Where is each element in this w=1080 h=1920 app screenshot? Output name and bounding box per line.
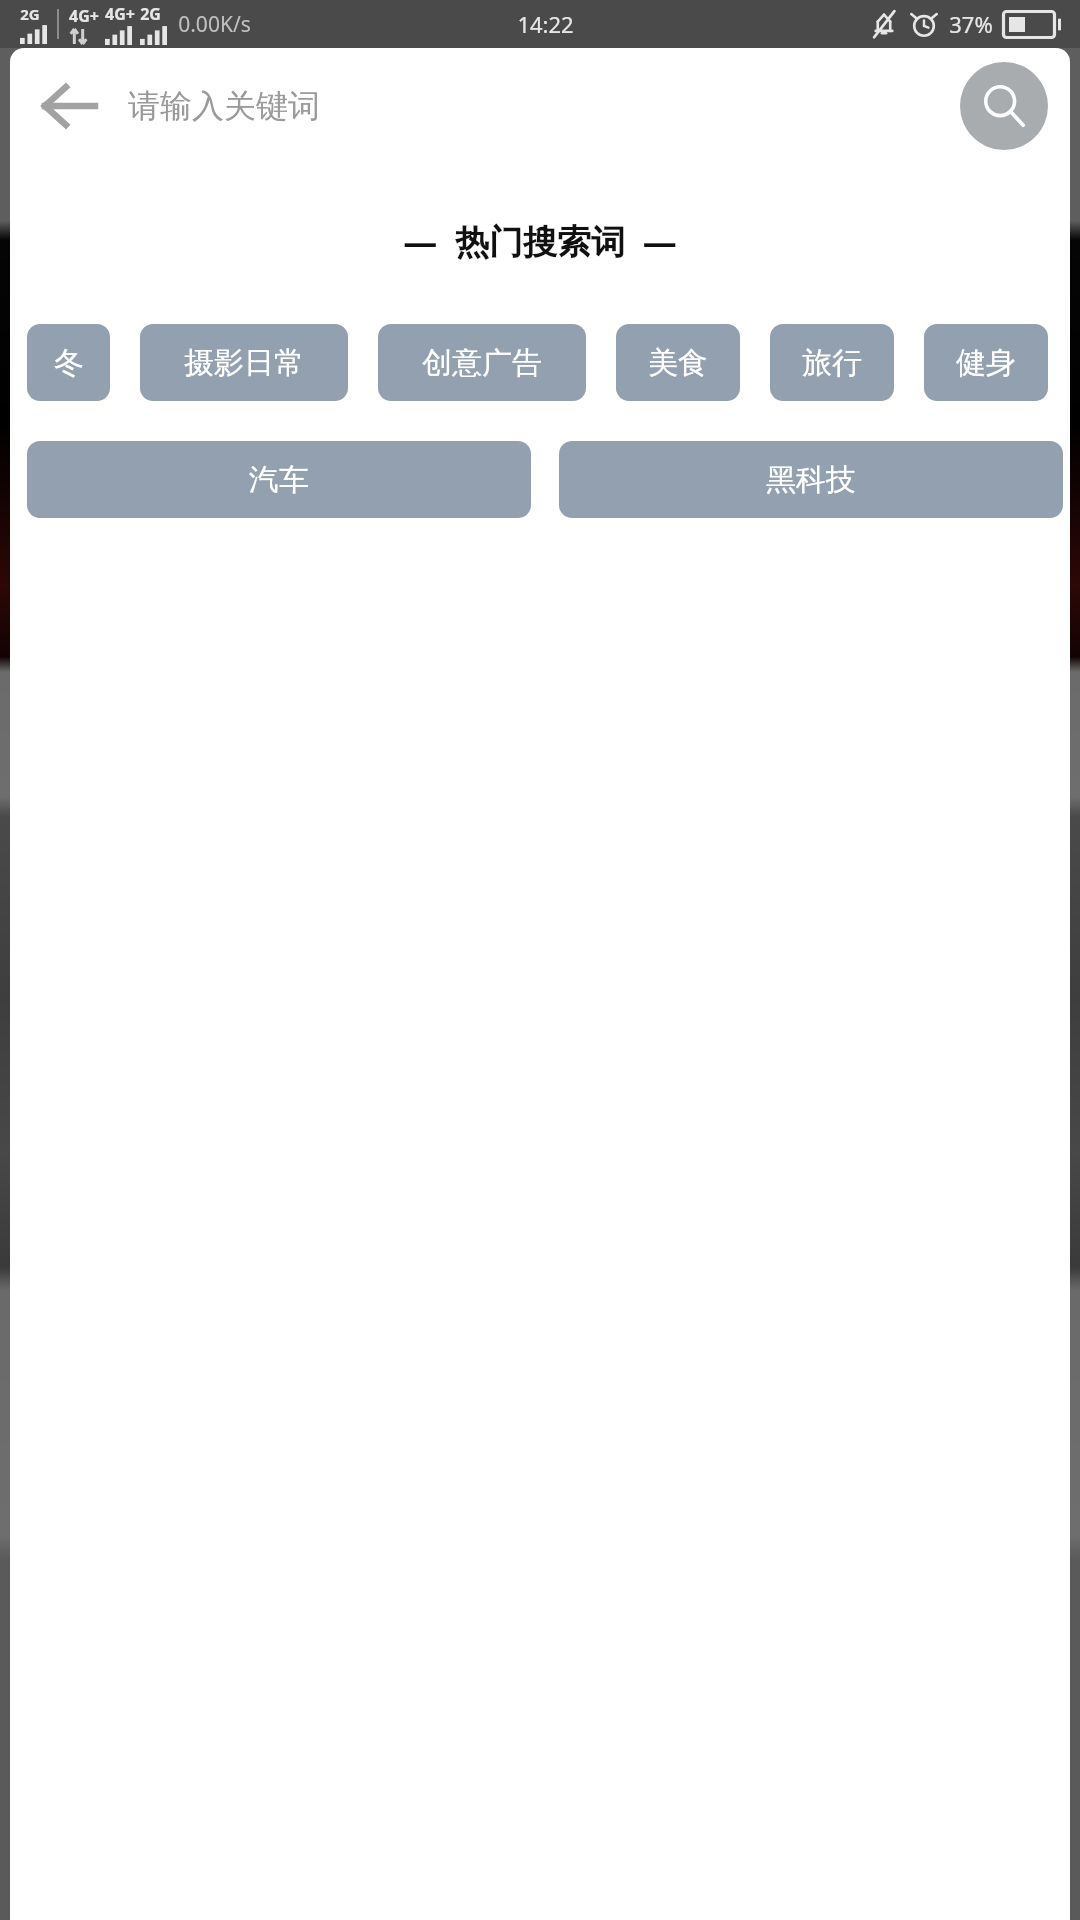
button[interactable]: 汽车 [27, 441, 531, 518]
button[interactable]: 摄影日常 [140, 324, 348, 401]
staticText: 请输入关键词 [128, 86, 320, 126]
staticText: 汽车 [249, 461, 309, 499]
staticText: 2G [140, 3, 161, 25]
button[interactable]: 请输入关键词 [128, 48, 320, 164]
button[interactable]: 健身 [924, 324, 1048, 401]
staticText: 美食 [648, 344, 708, 382]
staticText: 健身 [956, 344, 1016, 382]
button[interactable]: 冬 [27, 324, 110, 401]
staticText: 4G+ [69, 5, 99, 27]
staticText: 2G [20, 4, 40, 24]
button[interactable]: 旅行 [770, 324, 894, 401]
staticText: 14:22 [517, 9, 574, 39]
staticText: 冬 [54, 344, 84, 382]
staticText: 旅行 [802, 344, 862, 382]
button[interactable]: 创意广告 [378, 324, 586, 401]
staticText: 创意广告 [422, 344, 542, 382]
staticText: 摄影日常 [184, 344, 304, 382]
staticText: 37% [949, 9, 993, 39]
button[interactable]: 搜索 [960, 62, 1048, 150]
staticText: 0.00K/s [178, 10, 251, 39]
button[interactable]: 黑科技 [559, 441, 1063, 518]
button[interactable]: 返回 [30, 67, 108, 145]
staticText: 4G+ [105, 3, 135, 25]
staticText: 黑科技 [766, 461, 856, 499]
button[interactable]: 美食 [616, 324, 740, 401]
staticText: — 热门搜索词 — [403, 218, 677, 264]
